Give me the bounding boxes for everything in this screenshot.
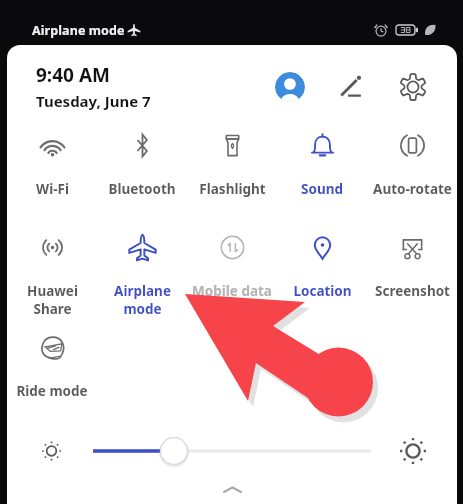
staticText: Huawei Share [27,282,78,318]
staticText: Auto-rotate [373,180,452,198]
button[interactable]: Bluetooth [97,129,187,198]
button[interactable]: Location [277,231,367,300]
staticText: Mobile data [192,282,272,300]
button[interactable]: Flashlight [187,129,277,198]
staticText: Flashlight [199,180,266,198]
button[interactable]: Collapse [7,481,457,497]
staticText: Tuesday, June 7 [36,91,151,111]
staticText: Screenshot [375,282,450,300]
staticText: Location [293,282,352,300]
button[interactable]: Auto-rotate [367,129,457,198]
staticText: Airplane mode [32,22,125,39]
button[interactable]: User account [275,72,305,102]
staticText: Ride mode [16,382,88,400]
button[interactable]: Mobile data [187,231,277,300]
button[interactable]: Edit shortcuts [336,72,366,102]
staticText: Airplane mode [114,282,171,318]
button[interactable]: Screenshot [367,231,457,300]
staticText: Wi-Fi [36,180,69,198]
staticText: Sound [301,180,343,198]
staticText: Bluetooth [108,180,176,198]
button[interactable]: Settings [398,72,428,102]
button[interactable]: Wi-Fi [7,129,97,198]
staticText: 9:40 AM [36,62,110,88]
button[interactable]: Ride mode [7,331,97,400]
button[interactable]: Airplane mode [97,231,187,318]
button[interactable]: Huawei Share [7,231,97,318]
button[interactable]: Sound [277,129,367,198]
